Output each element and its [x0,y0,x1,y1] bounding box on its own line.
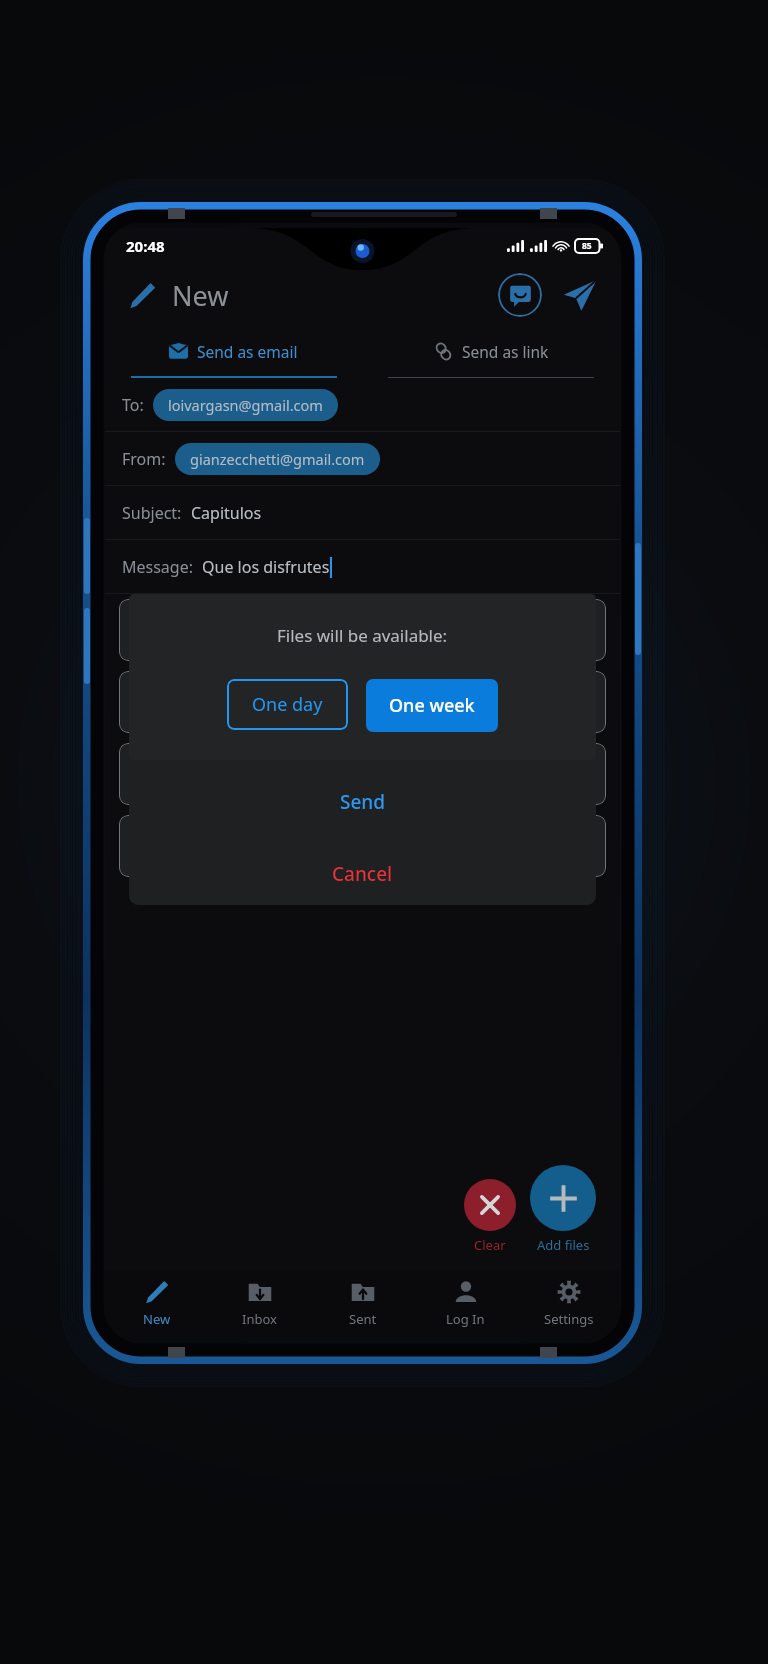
staticText: Sent [349,1310,377,1328]
staticText: Inbox [242,1310,277,1328]
button[interactable]: Compose [122,275,162,315]
staticText: Send [340,789,386,815]
staticText: Log In [446,1310,485,1328]
button[interactable]: Inbox [208,1270,311,1338]
button[interactable]: Send [129,771,596,833]
button[interactable]: New [105,1270,208,1338]
button[interactable] [119,743,606,805]
staticText: One day [252,692,323,717]
staticText: Message: [122,556,193,578]
button[interactable]: Send [557,272,603,318]
staticText: 85 [582,240,592,252]
staticText: New [143,1310,171,1328]
staticText: New [172,277,229,314]
button[interactable]: Add files [530,1165,596,1231]
staticText: Send as email [197,341,298,362]
staticText: To: [122,394,144,416]
staticText: Files will be available: [277,624,448,647]
staticText: Add files [537,1236,590,1254]
button[interactable]: Sent [311,1270,414,1338]
staticText: Subject: [122,502,182,524]
staticText: Settings [544,1310,594,1328]
button[interactable]: Subject: [105,486,620,540]
button[interactable]: loivargasn@gmail.com [153,389,338,421]
button[interactable]: Log In [414,1270,517,1338]
staticText: One week [389,693,475,718]
staticText: 20:48 [126,236,165,256]
staticText: Cancel [332,861,393,887]
button[interactable]: One day [227,679,348,730]
button[interactable]: Message: [105,540,620,594]
button[interactable]: To: [105,378,620,432]
button[interactable]: Messages [498,273,542,317]
staticText: From: [122,448,166,470]
staticText: Capitulos [191,502,262,524]
button[interactable] [119,599,606,661]
button[interactable] [119,815,606,877]
button[interactable]: Send as email [105,326,362,378]
button[interactable]: One week [366,679,498,732]
staticText: Clear [474,1236,506,1254]
button[interactable]: Settings [517,1270,620,1338]
button[interactable]: gianzecchetti@gmail.com [175,443,380,475]
button[interactable] [119,671,606,733]
button[interactable]: From: [105,432,620,486]
button[interactable]: Send as link [362,326,620,378]
staticText: gianzecchetti@gmail.com [190,449,365,469]
staticText: Send as link [462,341,549,362]
button[interactable]: Clear [464,1179,516,1231]
button[interactable]: Cancel [129,843,596,905]
staticText: loivargasn@gmail.com [168,395,323,415]
staticText: Que los disfrutes [202,556,330,578]
